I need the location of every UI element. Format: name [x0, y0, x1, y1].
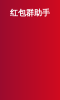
- staticText: 红包群助手: [10, 8, 50, 18]
